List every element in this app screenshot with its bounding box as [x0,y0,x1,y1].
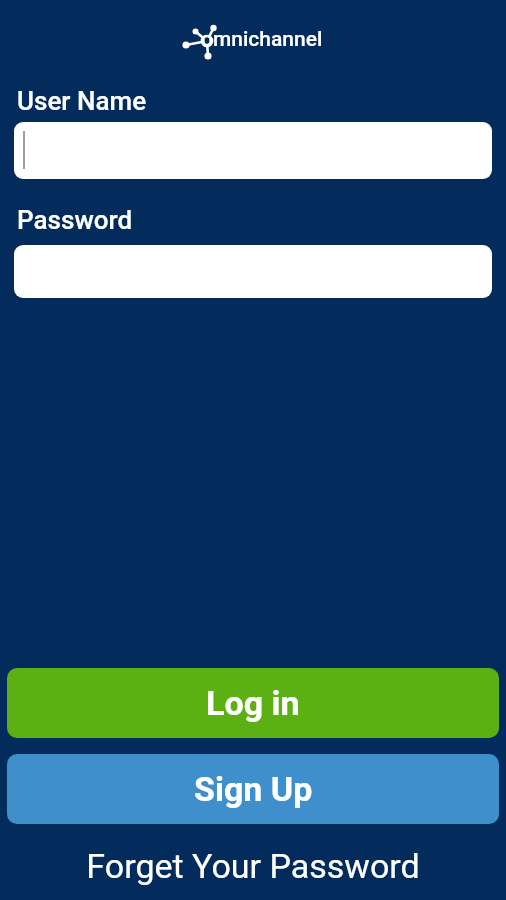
staticText: Password [17,205,133,235]
button[interactable] [14,245,492,298]
staticText: Sign Up [194,769,313,809]
button[interactable]: Forget Your Password [0,838,506,894]
staticText: User Name [17,86,147,116]
staticText: omnichannel [201,27,323,52]
staticText: Forget Your Password [86,846,420,886]
staticText: Log in [206,683,300,723]
button[interactable]: Sign Up [7,754,499,824]
button[interactable]: Log in [7,668,499,738]
button[interactable] [14,122,492,179]
